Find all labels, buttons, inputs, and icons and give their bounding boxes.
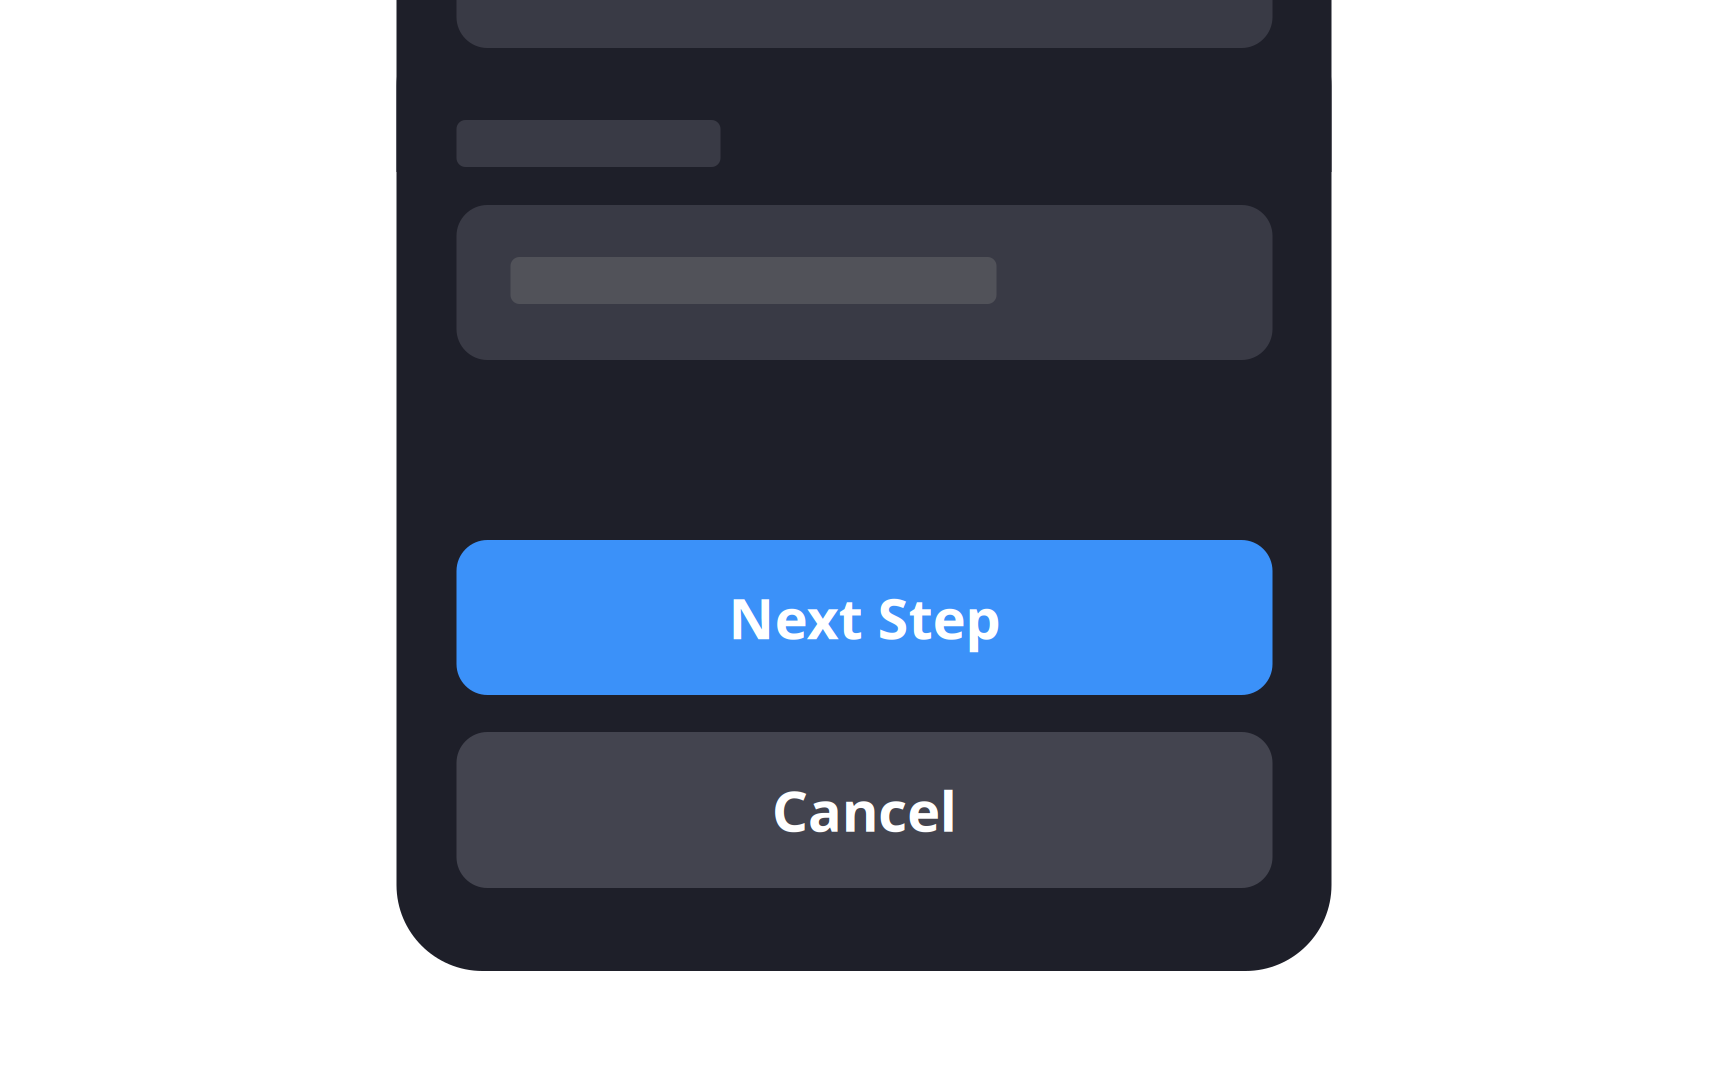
staticText: Next Step (728, 580, 1000, 655)
button[interactable]: Cancel (456, 732, 1272, 888)
staticText: Cancel (772, 773, 957, 847)
button[interactable]: Next Step (456, 540, 1272, 695)
button[interactable]: Text field (456, 205, 1272, 360)
